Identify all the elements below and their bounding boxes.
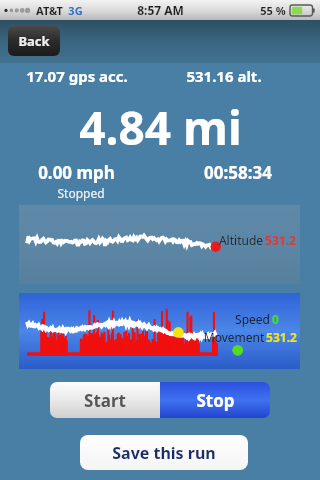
staticText: Stopped [57, 185, 105, 201]
staticText: 531.2 [266, 329, 297, 345]
staticText: Start [84, 389, 126, 412]
staticText: AT&T [36, 3, 63, 18]
staticText: 531.16 alt. [186, 66, 262, 86]
button[interactable]: Stop [160, 382, 270, 418]
staticText: Movement [202, 329, 266, 345]
staticText: 55 % [260, 3, 286, 18]
staticText: 3G [68, 3, 83, 18]
button[interactable]: Start [50, 382, 160, 418]
staticText: Stop [196, 389, 235, 412]
staticText: Save this run [112, 442, 216, 464]
staticText: 0 [272, 311, 279, 327]
staticText: 8:57 AM [137, 2, 184, 18]
staticText: 00:58:34 [204, 161, 272, 184]
staticText: Altitude [217, 232, 265, 248]
button[interactable]: Back [8, 26, 60, 56]
staticText: Speed [233, 311, 272, 327]
staticText: 531.2 [265, 232, 296, 248]
staticText: 0.00 mph [38, 161, 115, 184]
staticText: 4.84 mi [79, 96, 242, 150]
staticText: Back [18, 32, 50, 50]
staticText: 17.07 gps acc. [26, 66, 128, 86]
button[interactable]: Save this run [80, 435, 248, 470]
